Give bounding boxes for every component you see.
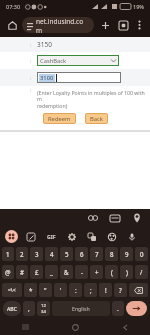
- staticText: -: [81, 268, 83, 276]
- staticText: +: [95, 268, 99, 276]
- button[interactable]: 5: [60, 247, 73, 261]
- button[interactable]: Back: [100, 319, 150, 335]
- button[interactable]: Voice input: [125, 230, 138, 243]
- staticText: ;: [90, 286, 92, 294]
- staticText: :: [30, 41, 32, 48]
- button[interactable]: Translate: [85, 230, 98, 243]
- staticText: #: [20, 268, 24, 276]
- staticText: ): [126, 268, 128, 276]
- staticText: English: [72, 305, 90, 312]
- staticText: 1: [6, 250, 10, 258]
- button[interactable]: ): [120, 265, 133, 279]
- staticText: ": [44, 286, 47, 294]
- staticText: £: [35, 268, 39, 276]
- staticText: Redeem: [48, 115, 71, 123]
- staticText: 12: [41, 303, 46, 309]
- button[interactable]: +: [90, 265, 103, 279]
- button[interactable]: English: [52, 301, 110, 316]
- staticText: (: [111, 268, 113, 276]
- button[interactable]: Clipboard: [24, 230, 37, 243]
- staticText: net.indusind.com: [36, 17, 89, 33]
- button[interactable]: Payment methods: [108, 211, 122, 225]
- staticText: 19%: [133, 3, 144, 10]
- button[interactable]: 1: [2, 247, 14, 261]
- button[interactable]: Numbers: [37, 301, 50, 316]
- staticText: 4: [50, 250, 54, 258]
- staticText: 2: [20, 250, 24, 258]
- button[interactable]: 3: [30, 247, 43, 261]
- button[interactable]: &: [60, 265, 73, 279]
- button[interactable]: Enter: [126, 301, 147, 316]
- button[interactable]: £: [30, 265, 43, 279]
- button[interactable]: ;: [84, 283, 97, 297]
- staticText: :: [30, 74, 32, 81]
- staticText: 8: [110, 250, 114, 258]
- button[interactable]: Settings: [65, 230, 78, 243]
- button[interactable]: @: [2, 265, 14, 279]
- staticText: ABC: [7, 305, 17, 312]
- button[interactable]: Backspace: [129, 283, 148, 297]
- button[interactable]: Open features menu: [5, 230, 18, 243]
- button[interactable]: 2: [16, 247, 28, 261]
- button[interactable]: 9: [120, 247, 133, 261]
- staticText: ,: [28, 304, 30, 313]
- button[interactable]: ABC: [3, 301, 21, 316]
- staticText: :: [30, 57, 32, 64]
- staticText: 6: [80, 250, 84, 258]
- button[interactable]: Switch tabs: [115, 17, 131, 33]
- staticText: @: [5, 268, 11, 276]
- staticText: Back: [90, 115, 103, 123]
- button[interactable]: (: [105, 265, 118, 279]
- button[interactable]: GIF: [43, 230, 59, 243]
- button[interactable]: /: [135, 265, 148, 279]
- staticText: 07:30: [6, 3, 21, 10]
- staticText: ?: [119, 286, 122, 294]
- staticText: .: [117, 304, 119, 313]
- button[interactable]: Back: [90, 113, 103, 124]
- button[interactable]: _: [45, 265, 58, 279]
- button[interactable]: 8: [105, 247, 118, 261]
- button[interactable]: CashBack: [40, 55, 116, 66]
- staticText: =\<: [8, 287, 16, 294]
- button[interactable]: More symbols: [2, 283, 22, 297]
- button[interactable]: Home: [50, 319, 100, 335]
- staticText: CashBack: [40, 57, 67, 65]
- button[interactable]: ": [39, 283, 52, 297]
- button[interactable]: #: [16, 265, 28, 279]
- button[interactable]: -: [75, 265, 88, 279]
- button[interactable]: New tab: [97, 17, 113, 33]
- staticText: !: [105, 286, 107, 294]
- staticText: GIF: [47, 233, 56, 240]
- staticText: (Enter Loyalty Points in multiples of 10…: [37, 89, 150, 109]
- button[interactable]: ': [54, 283, 67, 297]
- staticText: 5: [65, 250, 69, 258]
- button[interactable]: 0: [135, 247, 148, 261]
- staticText: :: [75, 286, 77, 294]
- button[interactable]: Home: [4, 17, 20, 33]
- staticText: /: [140, 268, 143, 276]
- button[interactable]: Passwords: [86, 211, 100, 225]
- button[interactable]: !: [99, 283, 112, 297]
- button[interactable]: ?: [114, 283, 127, 297]
- staticText: ': [60, 286, 62, 294]
- button[interactable]: 6: [75, 247, 88, 261]
- button[interactable]: 4: [45, 247, 58, 261]
- button[interactable]: *: [24, 283, 37, 297]
- button[interactable]: .: [112, 301, 124, 316]
- staticText: &: [64, 268, 69, 276]
- button[interactable]: Redeem: [48, 113, 71, 124]
- button[interactable]: Themes: [105, 230, 118, 243]
- staticText: _: [50, 268, 53, 276]
- button[interactable]: 7: [90, 247, 103, 261]
- staticText: 3: [35, 250, 39, 258]
- button[interactable]: More options: [132, 18, 146, 32]
- button[interactable]: ,: [23, 301, 35, 316]
- staticText: 3100: [40, 74, 54, 82]
- button[interactable]: Addresses: [130, 211, 144, 225]
- staticText: 3150: [37, 40, 52, 49]
- button[interactable]: :: [69, 283, 82, 297]
- button[interactable]: net.indusind.com: [27, 17, 89, 33]
- button[interactable]: Recents: [0, 319, 50, 335]
- staticText: *: [29, 286, 33, 294]
- staticText: 7: [95, 250, 99, 258]
